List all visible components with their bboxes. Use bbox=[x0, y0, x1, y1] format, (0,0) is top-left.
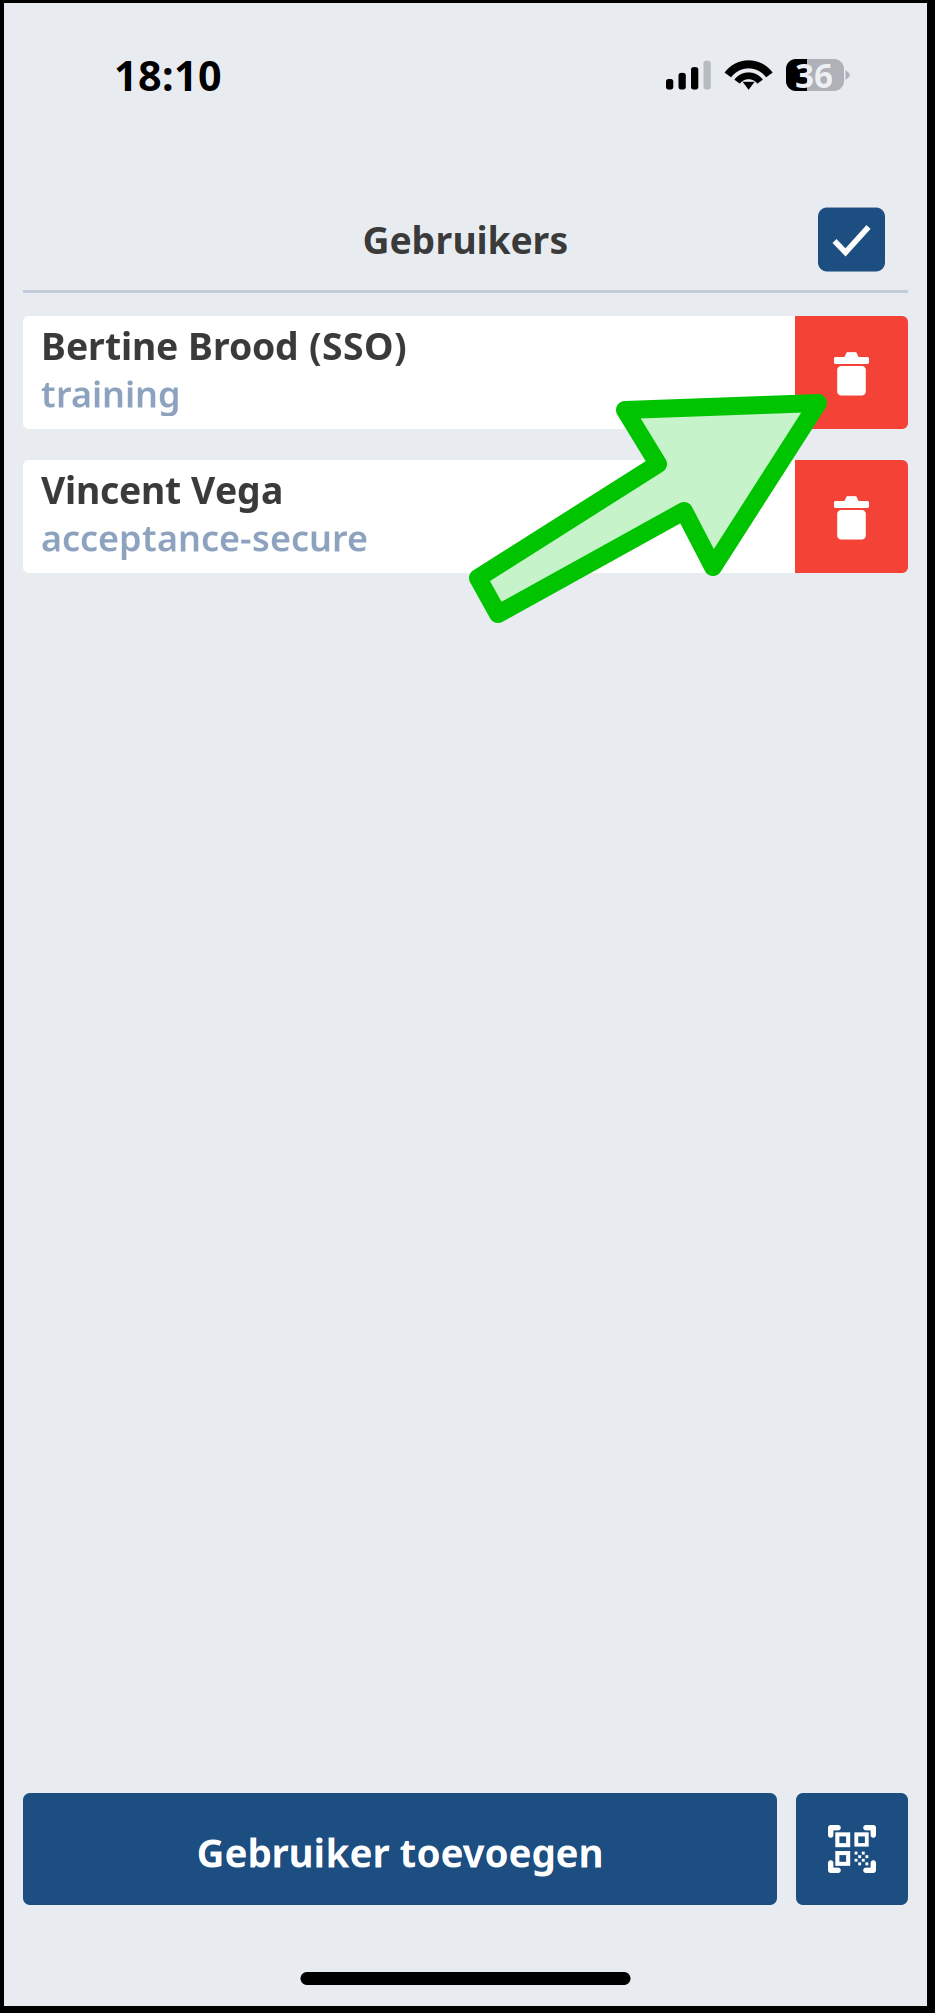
staticText: Gebruikers bbox=[362, 215, 568, 264]
staticText: Gebruiker toevoegen bbox=[196, 1827, 603, 1878]
button[interactable]: QR-code scannen bbox=[796, 1793, 908, 1905]
button[interactable]: Vincent Vega bbox=[23, 460, 795, 573]
staticText: 18:10 bbox=[114, 48, 222, 102]
button[interactable]: Verwijderen bbox=[795, 460, 908, 573]
button[interactable]: Gebruiker toevoegen bbox=[23, 1793, 777, 1905]
button[interactable]: Bevestigen bbox=[818, 207, 885, 271]
staticText: 36 bbox=[795, 53, 833, 97]
staticText: Vincent Vega bbox=[41, 465, 283, 514]
staticText: acceptance-secure bbox=[41, 514, 368, 561]
staticText: training bbox=[41, 370, 181, 417]
button[interactable]: Bertine Brood (SSO) bbox=[23, 316, 795, 429]
staticText: Bertine Brood (SSO) bbox=[41, 321, 407, 370]
button[interactable]: Verwijderen bbox=[795, 316, 908, 429]
